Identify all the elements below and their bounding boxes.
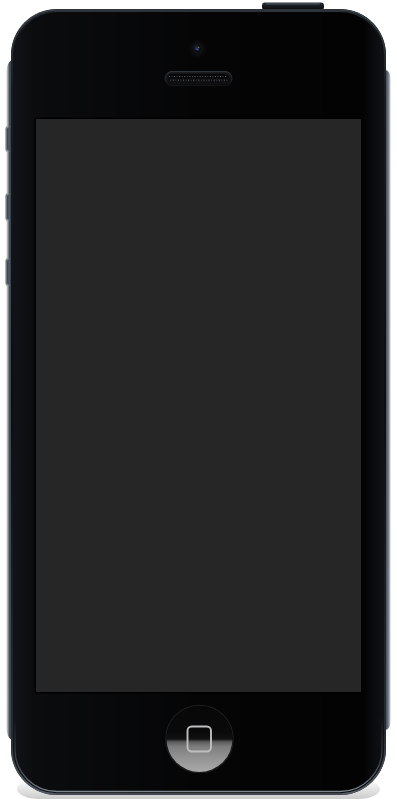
button[interactable]: Phone device preview [0,0,397,809]
